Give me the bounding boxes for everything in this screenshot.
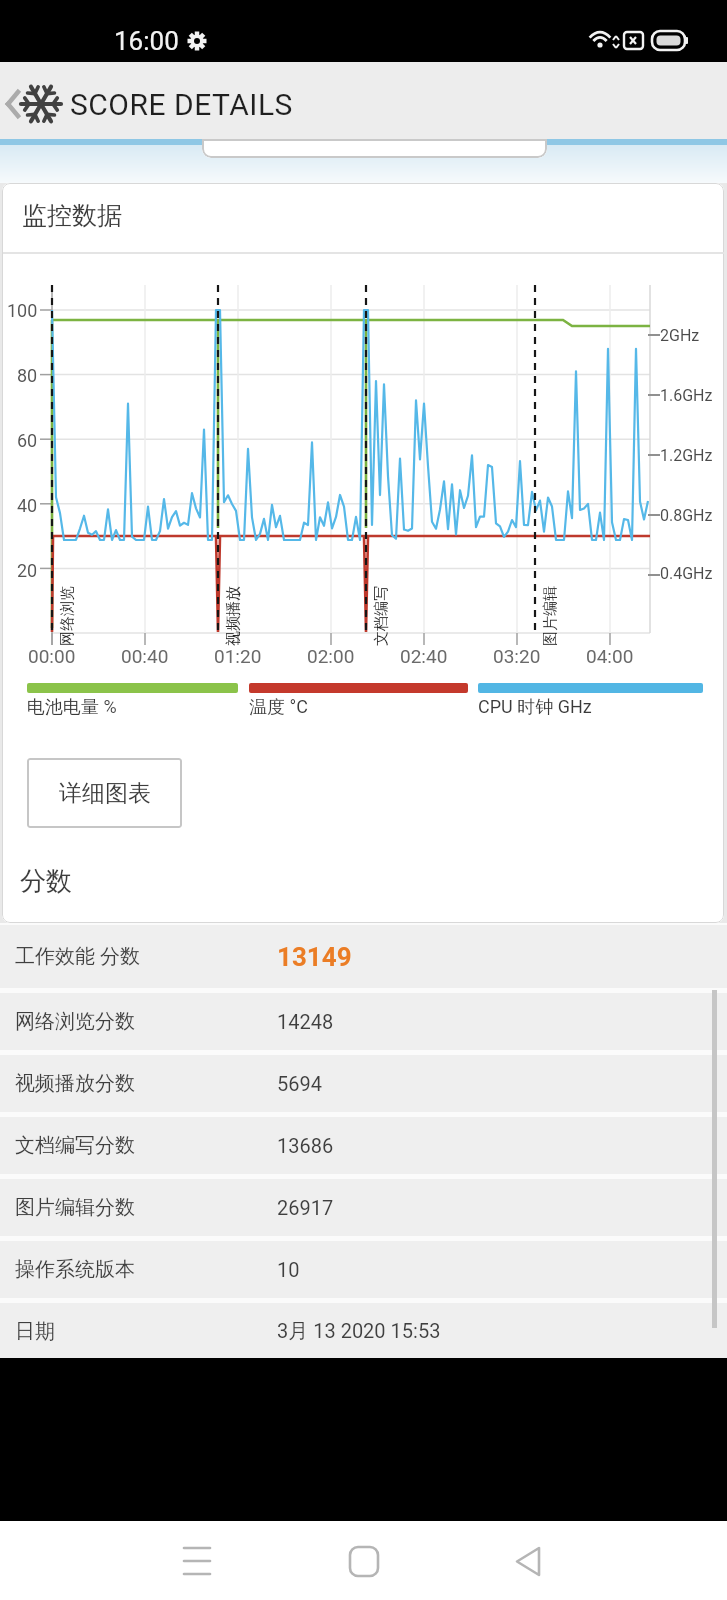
staticText: 分数 [20, 865, 72, 898]
button[interactable]: 日期 [0, 1303, 727, 1360]
staticText: 详细图表 [59, 779, 151, 808]
staticText: 网络浏览分数 [15, 1009, 135, 1034]
staticText: 80 [17, 365, 38, 386]
staticText: 3月 13 2020 15:53 [277, 1319, 441, 1344]
staticText: 20 [17, 560, 38, 581]
staticText: 1.6GHz [660, 386, 713, 405]
button[interactable]: 操作系统版本 [0, 1241, 727, 1298]
staticText: 00:00 [28, 645, 76, 667]
button[interactable]: 文档编写分数 [0, 1117, 727, 1174]
button[interactable]: 网络浏览分数 [0, 993, 727, 1050]
staticText: 03:20 [493, 645, 541, 667]
staticText: 100 [7, 300, 38, 321]
button[interactable]: 工作效能 分数 [0, 925, 727, 988]
staticText: CPU 时钟 GHz [478, 696, 592, 719]
button[interactable] [0, 80, 30, 130]
staticText: 60 [17, 430, 38, 451]
staticText: 13686 [277, 1134, 334, 1157]
staticText: 1.2GHz [660, 446, 713, 465]
staticText: 0.4GHz [660, 564, 713, 583]
staticText: 02:40 [400, 645, 448, 667]
button[interactable] [334, 1531, 394, 1591]
button[interactable]: 视频播放分数 [0, 1055, 727, 1112]
staticText: 01:20 [214, 645, 262, 667]
staticText: 2GHz [660, 326, 700, 345]
staticText: 04:00 [586, 645, 634, 667]
staticText: 13149 [277, 942, 352, 972]
staticText: 工作效能 分数 [15, 944, 140, 969]
staticText: 26917 [277, 1196, 334, 1219]
staticText: 14248 [277, 1010, 334, 1033]
staticText: 16:00 [114, 26, 179, 56]
staticText: 02:00 [307, 645, 355, 667]
staticText: 0.8GHz [660, 506, 713, 525]
staticText: 00:40 [121, 645, 169, 667]
staticText: 监控数据 [22, 200, 122, 231]
staticText: 10 [277, 1258, 300, 1281]
button[interactable] [500, 1531, 560, 1591]
staticText: 文档编写分数 [15, 1133, 135, 1158]
staticText: SCORE DETAILS [70, 87, 293, 122]
button[interactable]: 详细图表 [27, 758, 182, 828]
staticText: 40 [17, 495, 38, 516]
staticText: 5694 [277, 1072, 322, 1095]
staticText: 图片编辑分数 [15, 1195, 135, 1220]
button[interactable] [167, 1531, 227, 1591]
staticText: 温度 °C [249, 696, 308, 719]
staticText: 电池电量 % [27, 696, 117, 719]
button[interactable]: 图片编辑分数 [0, 1179, 727, 1236]
staticText: 操作系统版本 [15, 1257, 135, 1282]
staticText: 视频播放分数 [15, 1071, 135, 1096]
staticText: 日期 [15, 1319, 55, 1344]
